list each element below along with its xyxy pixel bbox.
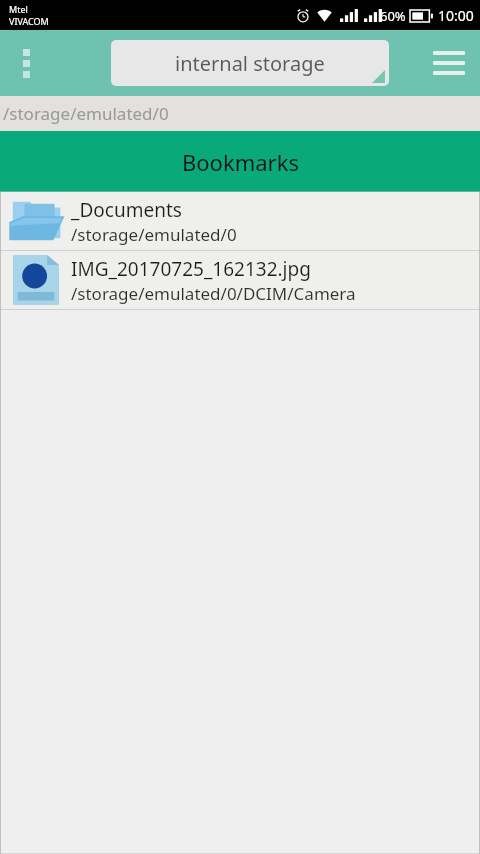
staticText: Bookmarks [182,147,299,177]
button[interactable]: More options [0,30,52,96]
staticText: /storage/emulated/0 [71,223,237,246]
staticText: VIVACOM [9,15,49,27]
staticText: /storage/emulated/0/DCIM/Camera [71,282,356,305]
staticText: _Documents [71,197,182,223]
staticText: internal storage [175,50,325,77]
staticText: Mtel [9,3,28,15]
staticText: /storage/emulated/0 [3,102,169,125]
button[interactable]: _Documents [1,192,479,250]
staticText: IMG_20170725_162132.jpg [71,256,311,282]
staticText: 60% [380,7,406,25]
button[interactable]: internal storage [111,40,389,86]
button[interactable]: IMG_20170725_162132.jpg [1,251,479,309]
button[interactable]: Bookmarks [0,131,480,192]
button[interactable]: Menu [418,30,480,96]
staticText: 10:00 [438,6,474,25]
